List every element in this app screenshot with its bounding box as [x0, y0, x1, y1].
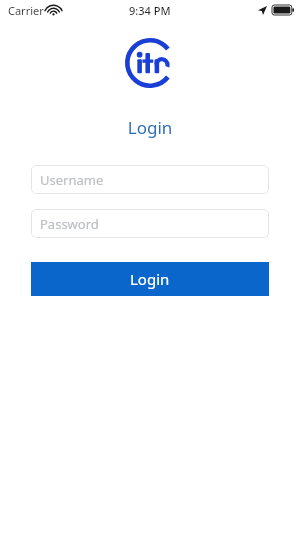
staticText: Login	[0, 116, 300, 139]
staticText: Username	[40, 171, 104, 189]
button[interactable]: Login	[31, 262, 269, 296]
staticText: 9:34 PM	[129, 3, 171, 18]
staticText: Carrier	[8, 3, 44, 18]
staticText: Login	[130, 269, 170, 289]
button[interactable]: Username	[31, 165, 269, 194]
staticText: Password	[40, 215, 99, 233]
button[interactable]: Password	[31, 209, 269, 238]
